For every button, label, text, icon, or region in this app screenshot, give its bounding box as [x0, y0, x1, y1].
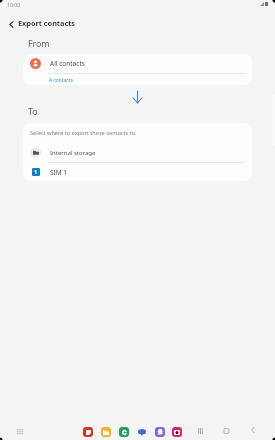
staticText: To	[28, 106, 38, 118]
staticText: 4 contacts	[49, 77, 73, 84]
button[interactable]: 1	[23, 163, 252, 181]
button[interactable]: Contacts	[119, 427, 129, 437]
staticText: Export contacts	[18, 18, 76, 28]
staticText: Select where to export these contacts to…	[30, 129, 137, 137]
button[interactable]: Camera	[172, 427, 182, 437]
button[interactable]: All contacts	[23, 54, 252, 73]
button[interactable]: Samsung Internet	[155, 427, 165, 437]
button[interactable]: My Files	[101, 427, 111, 437]
button[interactable]: Apps	[13, 424, 28, 439]
staticText: Internal storage	[50, 149, 96, 157]
button[interactable]: Internal storage	[23, 143, 252, 162]
staticText: 1	[34, 168, 38, 176]
staticText: 10:00	[7, 1, 21, 8]
staticText: All contacts	[50, 59, 85, 68]
button[interactable]: Notes	[83, 427, 93, 437]
button[interactable]: Recents	[193, 424, 207, 438]
staticText: SIM 1	[50, 168, 68, 177]
button[interactable]: Back	[2, 15, 20, 33]
button[interactable]: Home	[219, 424, 233, 438]
staticText: From	[28, 38, 50, 50]
button[interactable]: Back	[245, 423, 259, 437]
button[interactable]: Messages	[137, 427, 147, 437]
